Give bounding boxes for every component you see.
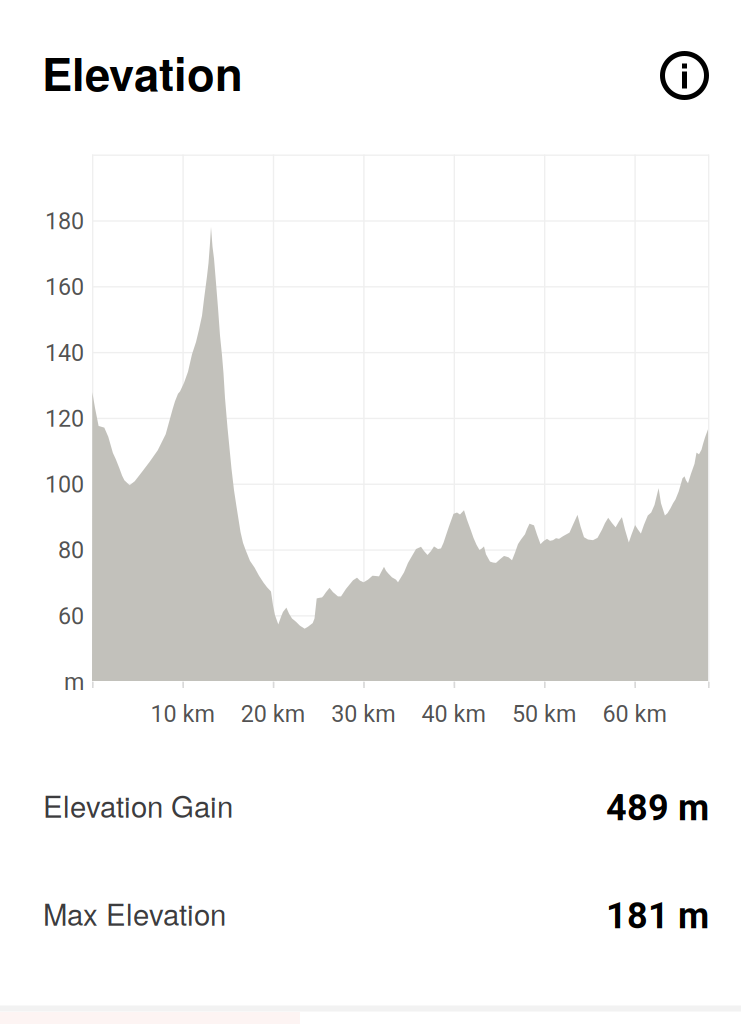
staticText: 80: [58, 537, 84, 564]
button[interactable]: Max Elevation: [43, 891, 707, 935]
staticText: 140: [45, 339, 84, 367]
staticText: 30 km: [331, 700, 395, 728]
staticText: 160: [45, 273, 84, 301]
staticText: 120: [45, 405, 84, 432]
staticText: Max Elevation: [43, 892, 226, 934]
staticText: 40 km: [422, 700, 486, 728]
staticText: Elevation Gain: [43, 784, 233, 826]
staticText: 50 km: [512, 700, 576, 728]
button[interactable]: Info: [650, 41, 718, 109]
staticText: 181 m: [606, 895, 709, 937]
staticText: 60 km: [602, 700, 666, 728]
staticText: 180: [45, 208, 84, 235]
staticText: 60: [58, 602, 84, 630]
staticText: 100: [45, 471, 84, 498]
button[interactable]: Elevation Gain: [43, 783, 707, 827]
staticText: 10 km: [150, 700, 214, 728]
staticText: m: [64, 668, 84, 696]
staticText: 489 m: [606, 787, 709, 829]
staticText: 20 km: [241, 700, 305, 728]
staticText: Elevation: [42, 40, 243, 105]
